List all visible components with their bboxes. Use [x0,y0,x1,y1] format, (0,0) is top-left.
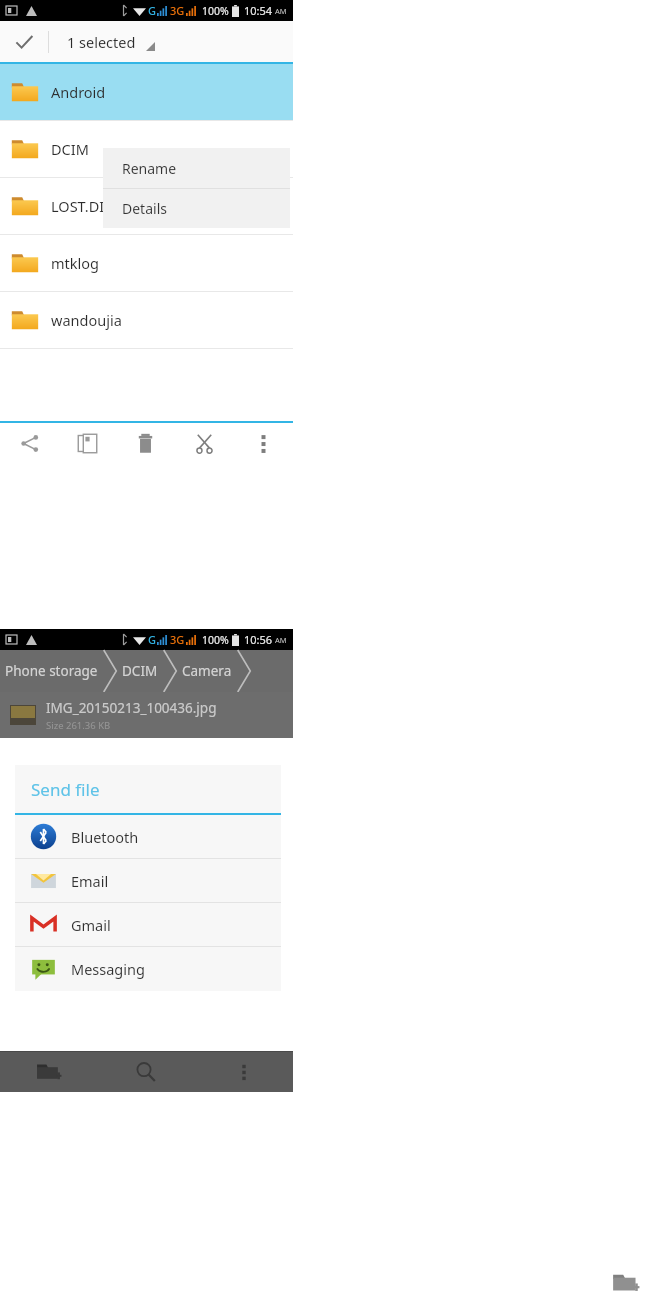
button[interactable]: Rename [103,148,290,188]
button[interactable]: Android [0,64,293,120]
button[interactable]: Share [0,423,58,463]
button[interactable]: New folder [612,1272,640,1294]
staticText: Bluetooth [71,827,139,847]
button[interactable]: Camera [177,662,237,680]
staticText: Gmail [71,915,111,935]
button[interactable]: More options [234,423,293,463]
staticText: wandoujia [51,310,122,330]
button[interactable]: Search [97,1052,195,1092]
staticText: Phone storage [5,662,98,680]
staticText: 10:54 [244,3,273,18]
staticText: DCIM [51,139,89,159]
button[interactable]: Details [103,189,290,228]
staticText: Email [71,871,109,891]
button[interactable]: LOST.DIR [0,178,293,234]
staticText: 1 selected [67,32,136,52]
staticText: mtklog [51,253,99,273]
staticText: 10:56 [244,632,273,647]
button[interactable]: wandoujia [0,292,293,348]
button[interactable]: Done [0,21,48,62]
button[interactable]: DCIM [0,121,293,177]
button[interactable]: Delete [116,423,175,463]
staticText: Details [122,199,167,218]
staticText: AM [275,6,287,16]
button[interactable]: Gmail [15,903,281,946]
staticText: AM [275,635,287,645]
staticText: Android [51,82,106,102]
staticText: G [148,632,156,647]
staticText: 100% [202,633,229,647]
staticText: LOST.DIR [51,196,114,216]
staticText: DCIM [122,662,158,680]
staticText: 3G [170,3,185,18]
button[interactable]: 1 selected [49,21,293,62]
button[interactable]: DCIM [117,662,163,680]
staticText: Size 261.36 KB [46,719,111,732]
button[interactable]: Copy [58,423,116,463]
staticText: Rename [122,159,177,178]
button[interactable]: mtklog [0,235,293,291]
staticText: Send file [31,778,100,801]
button[interactable]: Bluetooth [15,815,281,858]
button[interactable]: IMG_20150213_100436.jpg [0,692,293,738]
button[interactable]: Cut [175,423,234,463]
staticText: 100% [202,4,229,18]
staticText: G [148,3,156,18]
staticText: Messaging [71,959,145,979]
button[interactable]: Messaging [15,947,281,990]
staticText: 3G [170,632,185,647]
button[interactable]: Email [15,859,281,902]
staticText: Camera [182,662,232,680]
button[interactable]: Phone storage [0,662,103,680]
button[interactable]: New folder [0,1052,97,1092]
staticText: IMG_20150213_100436.jpg [46,699,217,717]
